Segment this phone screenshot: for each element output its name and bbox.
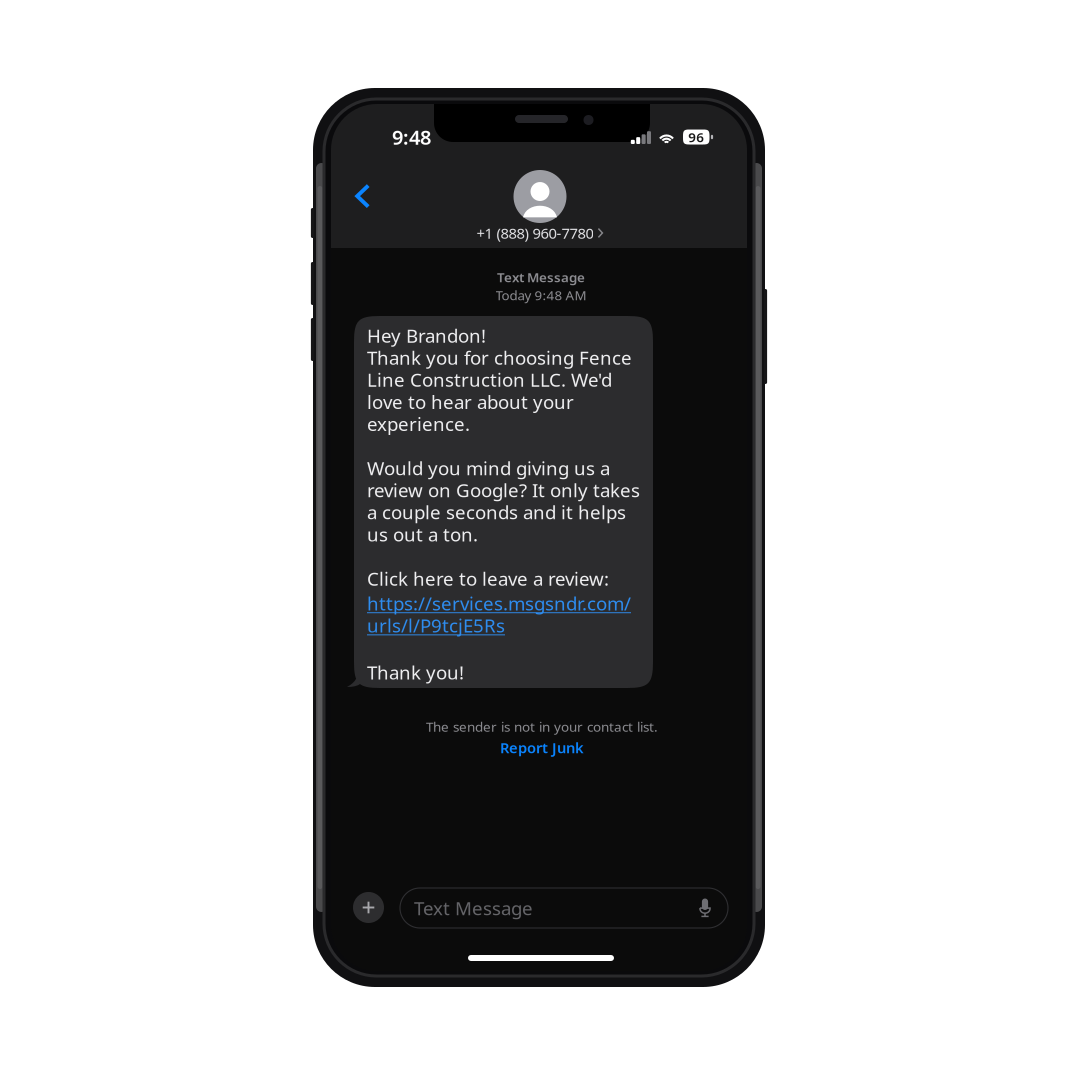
staticText: Today 9:48 AM [495, 286, 586, 304]
staticText: 9:48 [392, 124, 431, 150]
staticText: Report Junk [500, 738, 584, 757]
button[interactable]: Text Message [400, 888, 728, 928]
staticText: The sender is not in your contact list. [426, 717, 658, 736]
button[interactable]: Back [341, 174, 385, 218]
button[interactable]: Dictate [692, 890, 718, 926]
staticText: Hey Brandon! Thank you for choosing Fenc… [367, 323, 640, 591]
staticText: 96 [688, 128, 704, 146]
staticText: Text Message [497, 268, 585, 286]
staticText: +1 (888) 960-7780 [476, 223, 593, 243]
staticText: Thank you! [367, 638, 464, 685]
staticText: https://services.msgsndr.com/ urls/l/P9t… [367, 591, 631, 638]
button[interactable]: Report Junk [462, 739, 622, 756]
button[interactable]: +1 (888) 960-7780 [447, 170, 633, 242]
button[interactable]: Add attachment [353, 892, 384, 923]
staticText: Text Message [414, 896, 533, 920]
